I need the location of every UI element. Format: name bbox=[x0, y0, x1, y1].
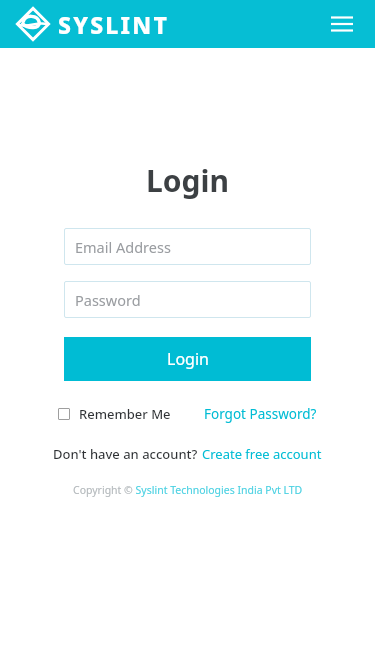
staticText: Remember Me bbox=[79, 405, 171, 423]
button[interactable]: Email Address bbox=[64, 228, 311, 265]
staticText: Copyright © Syslint Technologies India P… bbox=[73, 483, 303, 497]
staticText: SYSLINT bbox=[58, 9, 170, 40]
staticText: Create free account bbox=[202, 445, 322, 463]
staticText: Login bbox=[146, 160, 229, 201]
button[interactable]: Create free account bbox=[202, 445, 322, 463]
button[interactable]: Forgot Password? bbox=[204, 405, 317, 423]
button[interactable]: Remember Me bbox=[58, 405, 171, 423]
staticText: Don't have an account? bbox=[53, 445, 198, 463]
staticText: Password bbox=[75, 290, 141, 310]
button[interactable]: Password bbox=[64, 281, 311, 318]
button[interactable]: Login bbox=[64, 337, 311, 381]
staticText: Login bbox=[167, 348, 209, 370]
staticText: Email Address bbox=[75, 237, 171, 257]
staticText: Forgot Password? bbox=[204, 405, 317, 423]
button[interactable]: Open navigation menu bbox=[325, 7, 359, 41]
button[interactable]: SYSLINT bbox=[16, 7, 170, 41]
